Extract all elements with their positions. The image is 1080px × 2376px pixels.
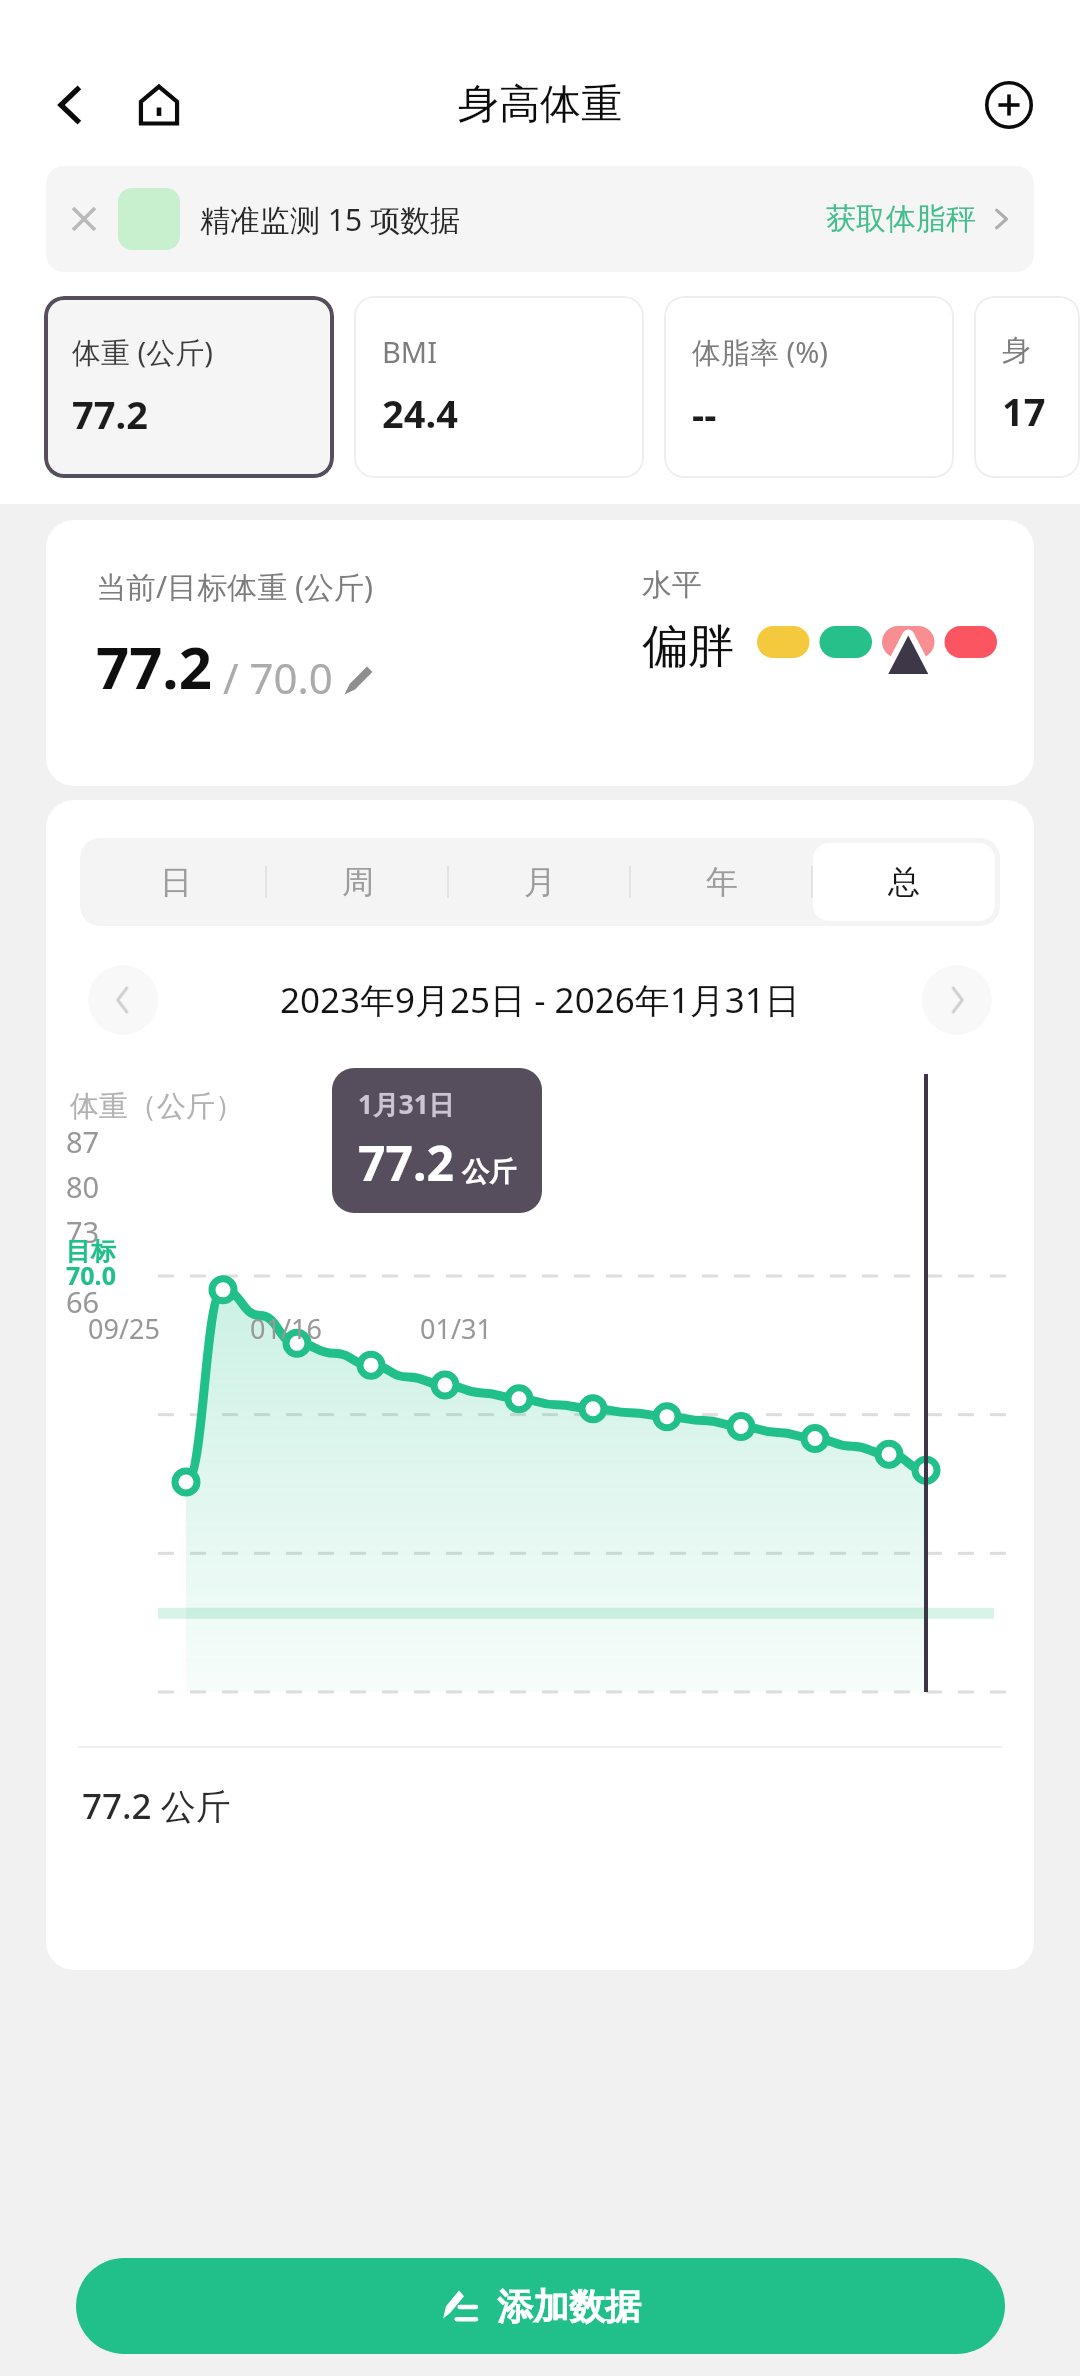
staticText: 2023年9月25日 - 2026年1月31日 xyxy=(280,976,800,1024)
staticText: 73 xyxy=(66,1212,100,1251)
staticText: 09/25 xyxy=(88,1310,160,1347)
staticText: / 70.0 xyxy=(212,649,333,706)
button[interactable]: 总 xyxy=(813,843,995,921)
button[interactable]: Home xyxy=(126,72,192,138)
staticText: 1月31日 xyxy=(358,1086,455,1122)
staticText: 01/31 xyxy=(420,1310,492,1347)
staticText: 水平 xyxy=(642,566,702,604)
button[interactable]: 年 xyxy=(631,843,813,921)
button[interactable]: Previous period xyxy=(88,965,158,1035)
button[interactable]: 月 xyxy=(449,843,631,921)
staticText: 身 xyxy=(1002,332,1031,369)
staticText: 87 xyxy=(66,1122,100,1161)
staticText: 添加数据 xyxy=(497,2284,641,2329)
button[interactable]: 日 xyxy=(85,843,267,921)
staticText: 77.2 xyxy=(358,1130,454,1195)
staticText: 24.4 xyxy=(382,387,458,439)
staticText: 身高体重 xyxy=(458,79,622,131)
button[interactable]: 周 xyxy=(267,843,449,921)
staticText: 年 xyxy=(706,862,738,902)
staticText: 01/16 xyxy=(250,1310,322,1347)
staticText: 日 xyxy=(160,862,192,902)
button[interactable]: Back xyxy=(38,72,104,138)
staticText: 目标 xyxy=(66,1236,116,1267)
staticText: 66 xyxy=(66,1282,100,1321)
staticText: 周 xyxy=(342,862,374,902)
staticText: 77.2 xyxy=(72,388,148,440)
staticText: 70.0 xyxy=(66,1258,116,1292)
staticText: 当前/目标体重 (公斤) xyxy=(96,566,373,607)
staticText: 月 xyxy=(524,862,556,902)
staticText: 体重 (公斤) xyxy=(72,332,213,372)
button[interactable]: Close xyxy=(46,166,1034,272)
staticText: 77.2 xyxy=(96,627,212,706)
staticText: 77.2 公斤 xyxy=(82,1782,231,1830)
button[interactable]: 体重 (公斤) xyxy=(44,296,334,478)
staticText: 偏胖 xyxy=(642,618,734,676)
staticText: 精准监测 15 项数据 xyxy=(200,199,460,240)
staticText: 总 xyxy=(888,862,920,902)
staticText: 获取体脂秤 xyxy=(826,200,976,238)
staticText: 体脂率 (%) xyxy=(692,332,829,372)
button[interactable]: Close xyxy=(64,199,104,239)
button[interactable]: Next period xyxy=(922,965,992,1035)
button[interactable]: BMI xyxy=(354,296,644,478)
staticText: -- xyxy=(692,388,717,440)
staticText: 公斤 xyxy=(462,1155,516,1189)
button[interactable]: Add xyxy=(976,72,1042,138)
staticText: 80 xyxy=(66,1167,100,1206)
button[interactable]: 当前/目标体重 (公斤) xyxy=(46,520,1034,786)
button[interactable]: 体脂率 (%) xyxy=(664,296,954,478)
button[interactable]: 身 xyxy=(974,296,1080,478)
staticText: 17 xyxy=(1002,385,1046,437)
staticText: 体重（公斤） xyxy=(70,1088,244,1125)
button[interactable]: 添加数据 xyxy=(76,2258,1005,2354)
staticText: BMI xyxy=(382,332,437,371)
